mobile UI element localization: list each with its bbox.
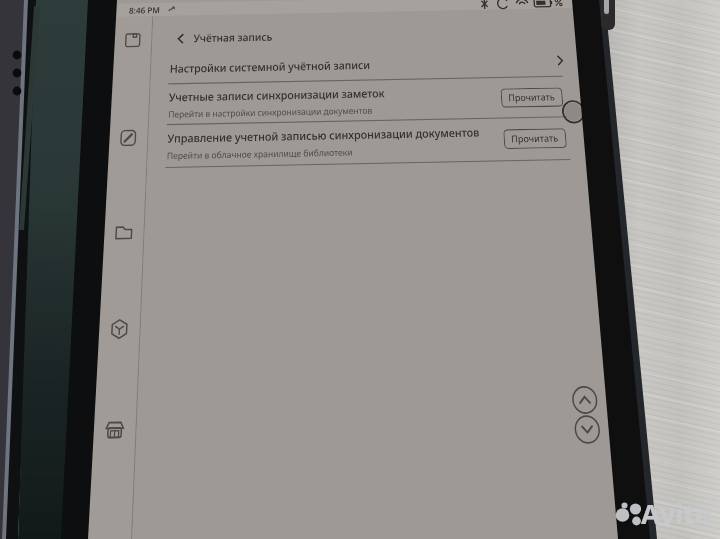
staticText: Прочитать xyxy=(511,132,559,146)
staticText: Управление учетной записью синхронизации… xyxy=(167,124,480,146)
button[interactable]: Storage xyxy=(109,217,139,248)
other: Back xyxy=(175,33,186,45)
button[interactable]: Управление учетной записью синхронизации… xyxy=(147,119,587,165)
staticText: Перейти в облачное хранилище библиотеки xyxy=(167,145,353,161)
staticText: 8:46 PM xyxy=(129,4,161,16)
button[interactable]: Учетные записи синхронизации заметок xyxy=(149,78,583,123)
button[interactable]: Notes xyxy=(114,123,143,152)
button[interactable]: Page up xyxy=(570,385,599,415)
button[interactable]: Apps xyxy=(104,313,135,345)
staticText: Avito xyxy=(641,495,712,532)
button[interactable]: Прочитать xyxy=(500,87,563,108)
staticText: Настройки системной учётной записи xyxy=(170,57,370,76)
staticText: Перейти в настройки синхронизации докуме… xyxy=(168,104,373,120)
staticText: Прочитать xyxy=(508,91,556,104)
button[interactable]: Back xyxy=(152,17,577,52)
button[interactable]: Library xyxy=(119,27,147,54)
button[interactable]: Page down xyxy=(573,414,602,445)
staticText: Учётная запись xyxy=(193,29,273,45)
button[interactable]: Прочитать xyxy=(503,128,567,149)
button[interactable]: Store xyxy=(99,413,130,447)
button[interactable]: Настройки системной учётной записи xyxy=(151,46,579,83)
staticText: Учетные записи синхронизации заметок xyxy=(169,85,385,105)
